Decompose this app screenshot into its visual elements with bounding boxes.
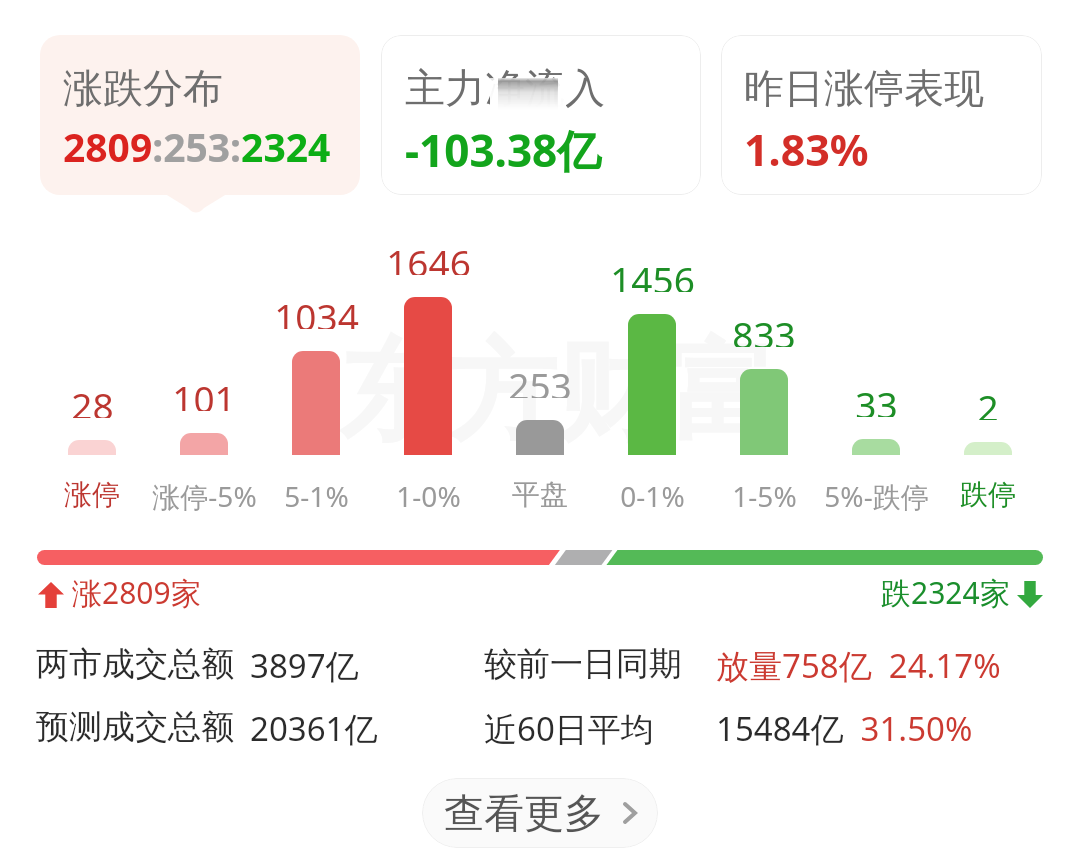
button[interactable]: 上涨 2809 家 [34,572,204,612]
staticText: 33 [855,379,898,417]
staticText: 主力净流入 [405,63,605,113]
staticText: 2 [977,382,999,420]
staticText: 较前一日同期 [484,643,682,685]
staticText: 20361亿 [250,706,378,751]
button[interactable]: 下跌 2324 家 [877,572,1047,612]
button[interactable] [708,230,820,512]
staticText: 5-1% [284,477,349,511]
button[interactable] [596,230,708,512]
button[interactable] [260,230,372,512]
staticText: 1034 [274,291,359,329]
staticText: 涨跌分布 [63,63,223,113]
button[interactable]: 涨跌分布 [40,35,360,195]
staticText: 1-0% [396,477,461,511]
button[interactable] [484,230,596,512]
staticText: 2809:253:2324 [63,120,331,173]
staticText: 平盘 [512,477,568,511]
staticText: 833 [732,309,796,347]
staticText: 1456 [610,254,695,292]
staticText: 预测成交总额 [36,706,234,748]
button[interactable]: 查看更多 [422,778,658,848]
staticText: 跌2324家 [881,572,1010,613]
staticText: 253 [508,360,572,398]
staticText: 两市成交总额 [36,643,234,685]
staticText: -103.38亿 [405,120,602,180]
button[interactable] [148,230,260,512]
button[interactable] [932,230,1044,512]
staticText: 0-1% [620,477,685,511]
staticText: 5%-跌停 [824,477,929,511]
staticText: 涨停 [64,477,120,511]
staticText: 15484亿 31.50% [716,706,973,751]
staticText: 涨停-5% [152,477,257,511]
button[interactable] [820,230,932,512]
staticText: 东方财富 [339,324,775,461]
button[interactable]: 主力净流入 [381,35,701,195]
staticText: 昨日涨停表现 [744,63,984,113]
staticText: 查看更多 [444,788,604,838]
staticText: 涨2809家 [72,572,201,613]
staticText: 3897亿 [250,643,359,688]
staticText: 跌停 [960,477,1016,511]
staticText: 1-5% [732,477,797,511]
button[interactable] [372,230,484,512]
staticText: 28 [71,380,114,418]
staticText: 1646 [386,237,471,275]
staticText: 1.83% [744,120,869,179]
staticText: 101 [172,373,236,411]
button[interactable] [36,230,148,512]
staticText: 近60日平均 [484,706,654,751]
staticText: 放量758亿 24.17% [716,643,1001,688]
button[interactable]: 昨日涨停表现 [721,35,1042,195]
